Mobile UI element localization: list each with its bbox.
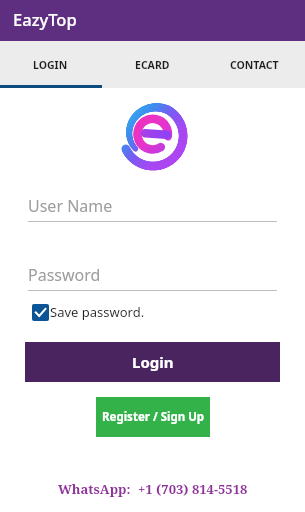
staticText: EazyTop [13, 8, 77, 30]
staticText: WhatsApp: [58, 480, 131, 498]
staticText: LOGIN [33, 58, 68, 72]
staticText: User Name [28, 195, 113, 217]
staticText: Login [132, 352, 174, 372]
staticText: Register / Sign Up [102, 409, 205, 425]
staticText: ECARD [135, 58, 170, 72]
button[interactable]: Login [25, 342, 280, 382]
staticText: Save password. [50, 303, 145, 321]
button[interactable]: Save password. [32, 303, 145, 321]
staticText: Password [28, 264, 101, 286]
button[interactable]: CONTACT [203, 41, 305, 88]
button[interactable]: LOGIN [0, 41, 101, 88]
button[interactable]: Register / Sign Up [96, 397, 210, 437]
staticText: CONTACT [230, 58, 279, 72]
staticText: +1 (703) 814-5518 [138, 480, 248, 498]
button[interactable]: ECARD [101, 41, 203, 88]
